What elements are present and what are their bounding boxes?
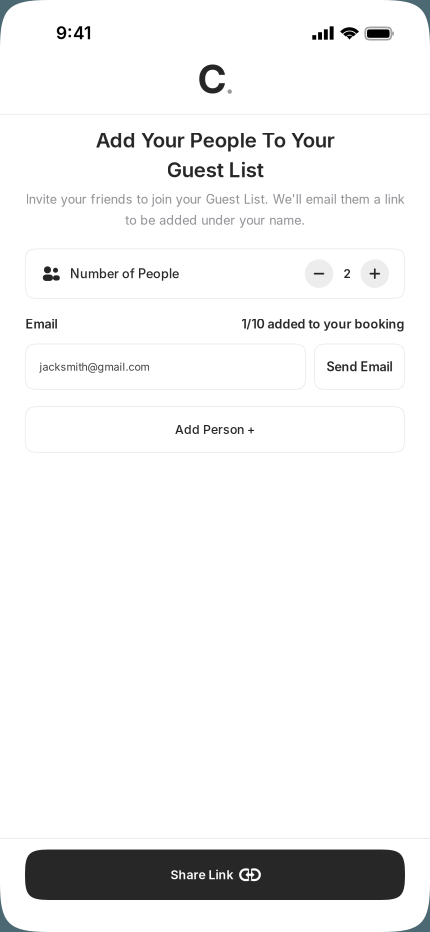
staticText: Send Email	[326, 359, 392, 374]
staticText: Share Link	[170, 867, 233, 882]
button[interactable]: Send Email	[314, 344, 405, 390]
staticText: C	[198, 56, 226, 103]
staticText: 9:41	[56, 22, 91, 43]
staticText: jacksmith@gmail.com	[39, 360, 149, 373]
button[interactable]: Add Person +	[25, 407, 405, 452]
button[interactable]: Decrease number of people	[305, 259, 333, 288]
staticText: Add Person +	[175, 422, 255, 437]
staticText: Invite your friends to join your Guest L…	[25, 192, 404, 228]
button[interactable]: Share Link	[25, 849, 405, 900]
staticText: 2	[343, 267, 350, 281]
staticText: 1/10 added to your booking	[242, 316, 405, 332]
staticText: Number of People	[70, 266, 179, 281]
staticText: Email	[25, 316, 57, 332]
staticText: Add Your People To Your Guest List	[95, 128, 334, 182]
button[interactable]: Increase number of people	[360, 259, 389, 288]
